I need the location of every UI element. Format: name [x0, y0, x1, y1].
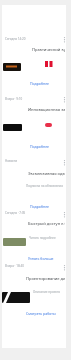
button[interactable]: Эксклюзивная одежда для всех [28, 171, 65, 177]
button[interactable]: Инновационная зарядка устройств [28, 107, 65, 113]
button[interactable]: Article image [2, 292, 30, 303]
staticText: Узнать больше [28, 256, 54, 261]
button[interactable]: Article image [3, 63, 21, 71]
button[interactable]: More options [61, 211, 68, 218]
button[interactable]: Подробнее [30, 204, 50, 209]
button[interactable]: More options [61, 264, 68, 271]
button[interactable]: More options [61, 96, 68, 103]
button[interactable]: Подробнее [30, 144, 50, 149]
staticText: Подробнее [30, 204, 50, 209]
button[interactable]: Новости [5, 159, 18, 163]
staticText: Сегодня · 7:05 [5, 211, 26, 215]
button[interactable]: Практический курс по дизайну [32, 47, 65, 53]
staticText: Сегодня 14:20 [5, 37, 26, 41]
staticText: Подписка на обновления [26, 184, 66, 188]
staticText: Быстрый доступ к библиотеке [28, 221, 65, 226]
staticText: Смотреть работы [26, 311, 56, 316]
staticText: Новости [5, 159, 18, 163]
button[interactable]: Проектирование дизайн систем [26, 276, 65, 282]
staticText: Инновационная зарядка устройств [28, 107, 65, 112]
button[interactable]: Сегодня 14:20 [5, 37, 26, 41]
staticText: Проектирование дизайн систем [26, 276, 65, 281]
staticText: Подробнее [30, 81, 50, 86]
button[interactable]: Вчера · 18:40 [5, 264, 24, 268]
button[interactable]: More options [61, 159, 68, 166]
button[interactable]: Подробнее [30, 81, 50, 86]
staticText: Подробнее [30, 144, 50, 149]
button[interactable]: Узнать больше [28, 256, 54, 261]
button[interactable]: Сегодня · 7:05 [5, 211, 26, 215]
button[interactable]: More options [61, 36, 68, 43]
button[interactable]: Article image [3, 124, 22, 131]
button[interactable]: Article image [3, 238, 26, 246]
staticText: Вчера · 18:40 [5, 264, 24, 268]
button[interactable]: Быстрый доступ к библиотеке [28, 221, 65, 227]
button[interactable]: Вчера · 9:10 [5, 97, 23, 101]
staticText: Читать подробнее [29, 236, 66, 240]
staticText: Эксклюзивная одежда для всех [28, 171, 65, 176]
staticText: Вчера · 9:10 [5, 97, 23, 101]
button[interactable]: Смотреть работы [26, 311, 56, 316]
staticText: Описание проекта [33, 290, 66, 294]
staticText: Практический курс по дизайну [32, 47, 65, 52]
